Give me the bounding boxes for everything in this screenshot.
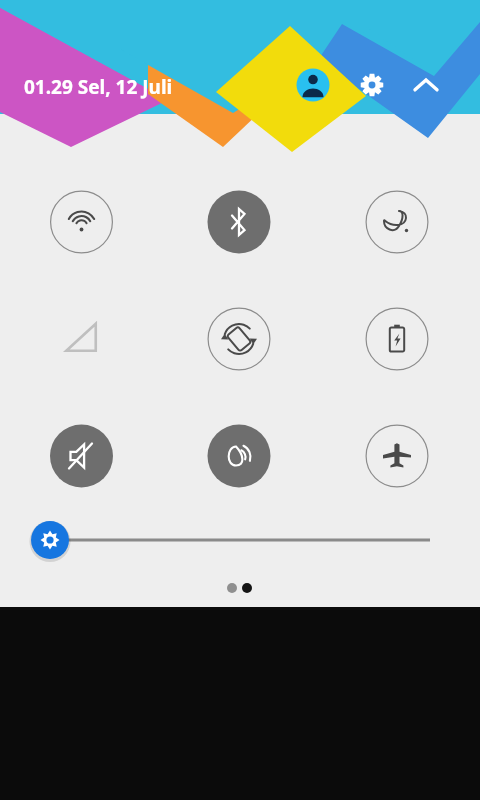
- button[interactable]: Collapse quick settings: [407, 66, 445, 104]
- button[interactable]: Wi-Fi: [50, 191, 113, 254]
- button[interactable]: Cast: [366, 191, 429, 254]
- button[interactable]: Brightness: [24, 518, 448, 562]
- button[interactable]: Mobile signal: [50, 308, 113, 371]
- button[interactable]: Mute: [50, 425, 113, 488]
- button[interactable]: Auto-rotate: [208, 308, 271, 371]
- button[interactable]: Open user profile: [294, 66, 332, 104]
- button[interactable]: Airplane mode: [366, 425, 429, 488]
- button[interactable]: Page 1: [222, 578, 242, 598]
- button[interactable]: Touch sounds: [208, 425, 271, 488]
- button[interactable]: Settings: [353, 66, 391, 104]
- button[interactable]: Bluetooth: [208, 191, 271, 254]
- button[interactable]: Battery saver: [366, 308, 429, 371]
- button[interactable]: Page 2: [237, 578, 257, 598]
